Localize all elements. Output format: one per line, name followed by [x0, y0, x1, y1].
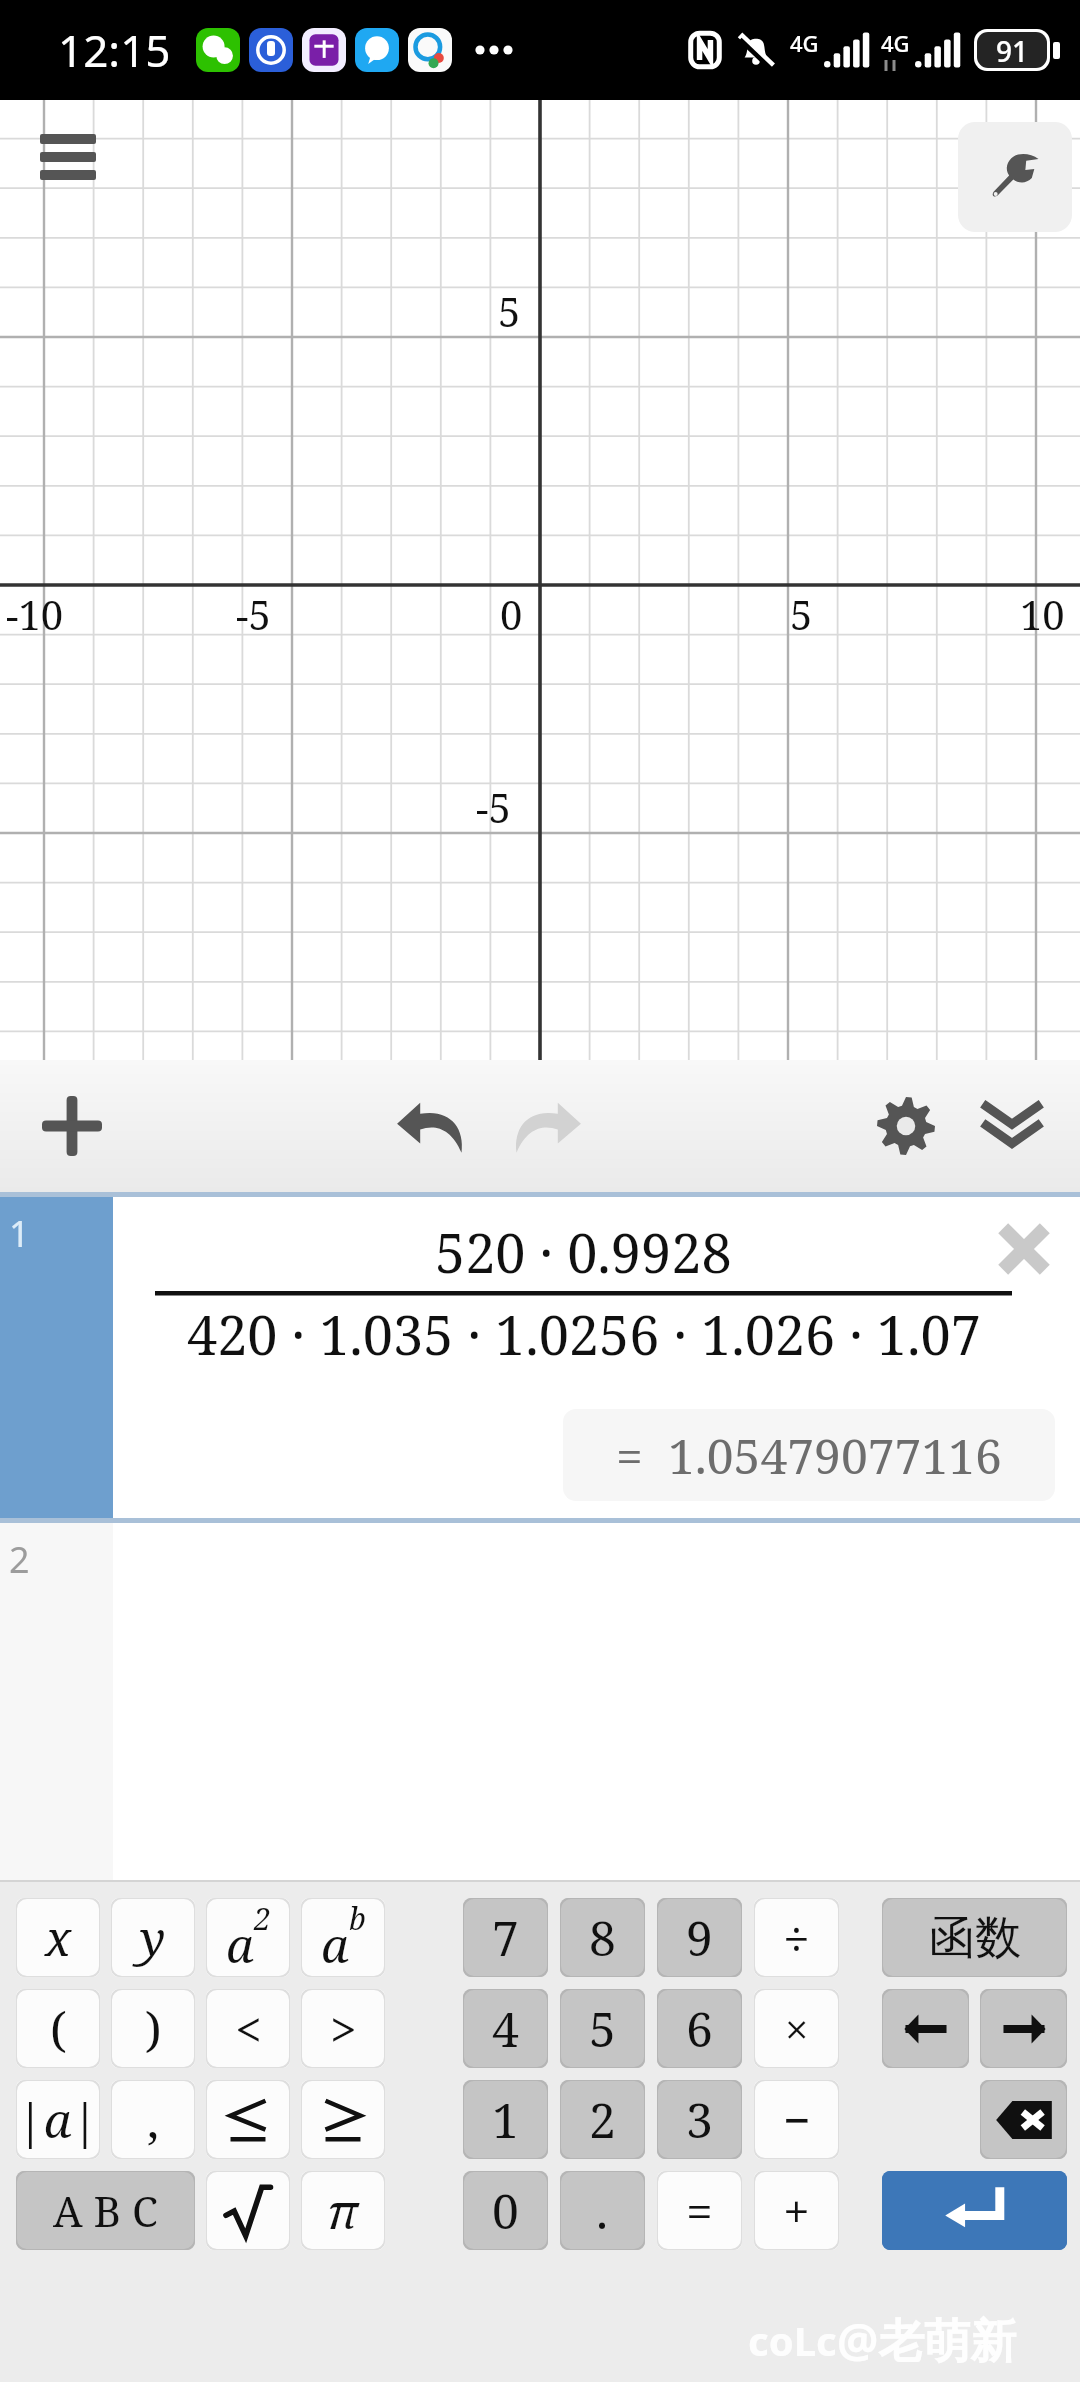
staticText: × [785, 2000, 809, 2057]
staticText: 7 [492, 1905, 519, 1970]
staticText: 8 [589, 1905, 616, 1970]
staticText: 函数 [929, 1909, 1021, 1967]
staticText: 1 [9, 1209, 30, 1258]
button[interactable]: ) [111, 1989, 195, 2068]
button[interactable]: Redo [490, 1068, 606, 1184]
staticText: . [596, 2178, 609, 2243]
button[interactable]: , [111, 2080, 195, 2159]
staticText: + [783, 2178, 810, 2243]
button[interactable] [301, 2080, 385, 2159]
button[interactable] [206, 2080, 290, 2159]
button[interactable]: 3 [657, 2080, 742, 2159]
staticText: 91 [996, 32, 1029, 68]
staticText: A B C [53, 2182, 158, 2239]
staticText: 1 [492, 2087, 519, 2152]
staticText: = [686, 2178, 713, 2243]
button[interactable]: ( [16, 1989, 100, 2068]
staticText: 9 [686, 1905, 713, 1970]
button[interactable]: Delete expression [976, 1201, 1072, 1297]
staticText: @老萌新 [837, 2308, 1017, 2371]
staticText: b [349, 1898, 366, 1939]
button[interactable]: |a| [16, 2080, 100, 2159]
staticText: |a| [17, 2087, 99, 2152]
staticText: − [783, 2087, 811, 2152]
button[interactable]: + [754, 2171, 839, 2250]
button[interactable]: 0 [463, 2171, 548, 2250]
button[interactable]: Menu [22, 110, 114, 202]
staticText: π [327, 2178, 359, 2243]
staticText: -5 [476, 780, 511, 834]
button[interactable]: a [206, 1898, 290, 1977]
staticText: , [147, 2087, 160, 2152]
staticText: 5 [790, 587, 813, 641]
button[interactable]: Settings [848, 1068, 964, 1184]
staticText: y [140, 1905, 166, 1970]
button[interactable]: 9 [657, 1898, 742, 1977]
button[interactable]: 8 [560, 1898, 645, 1977]
button[interactable]: > [301, 1989, 385, 2068]
button[interactable]: Collapse keypad [954, 1068, 1070, 1184]
staticText: ( [50, 1996, 67, 2061]
button[interactable]: Enter [882, 2171, 1067, 2250]
button[interactable]: × [754, 1989, 839, 2068]
staticText: a [226, 1912, 254, 1977]
button[interactable]: x [16, 1898, 100, 1977]
button[interactable]: Graph settings [958, 122, 1072, 232]
staticText: = 1.05479077116 [616, 1423, 1002, 1488]
staticText: < [235, 1996, 262, 2061]
staticText: 6 [686, 1996, 713, 2061]
button[interactable]: − [754, 2080, 839, 2159]
button[interactable]: Undo [372, 1068, 488, 1184]
staticText: -10 [6, 587, 64, 641]
button[interactable]: 1 [0, 1197, 1080, 1518]
staticText: 12:15 [58, 20, 171, 80]
button[interactable]: Move cursor left [882, 1989, 969, 2068]
staticText: 5 [589, 1996, 616, 2061]
button[interactable]: 6 [657, 1989, 742, 2068]
button[interactable]: 1 [463, 2080, 548, 2159]
staticText: 10 [1020, 587, 1065, 641]
staticText: x [45, 1905, 72, 1970]
staticText: 5 [498, 284, 521, 338]
staticText: 2 [254, 1898, 271, 1939]
staticText: ) [145, 1996, 162, 2061]
button[interactable]: 4 [463, 1989, 548, 2068]
staticText: 4G [790, 28, 819, 58]
staticText: a [321, 1912, 349, 1977]
button[interactable]: 2 [560, 2080, 645, 2159]
staticText: 4 [492, 1996, 519, 2061]
staticText: 2 [9, 1535, 30, 1584]
button[interactable]: A B C [16, 2171, 195, 2250]
button[interactable] [206, 2171, 290, 2250]
staticText: -5 [236, 587, 271, 641]
button[interactable]: . [560, 2171, 645, 2250]
button[interactable]: 函数 [882, 1898, 1067, 1977]
button[interactable]: 2 [0, 1523, 1080, 1880]
button[interactable]: Add expression [14, 1068, 130, 1184]
button[interactable]: y [111, 1898, 195, 1977]
staticText: 3 [686, 2087, 713, 2152]
button[interactable]: Backspace [980, 2080, 1067, 2159]
button[interactable]: π [301, 2171, 385, 2250]
button[interactable]: ÷ [754, 1898, 839, 1977]
button[interactable]: < [206, 1989, 290, 2068]
button[interactable]: = [657, 2171, 742, 2250]
staticText: 520 · 0.9928 [435, 1215, 732, 1289]
staticText: 4G [881, 28, 910, 58]
staticText: > [330, 1996, 357, 2061]
staticText: 2 [589, 2087, 616, 2152]
staticText: 0 [500, 587, 523, 641]
button[interactable]: 5 [560, 1989, 645, 2068]
button[interactable]: a [301, 1898, 385, 1977]
button[interactable]: Move cursor right [980, 1989, 1067, 2068]
staticText: coLc [748, 2313, 837, 2367]
staticText: 0 [492, 2178, 519, 2243]
button[interactable]: 7 [463, 1898, 548, 1977]
staticText: ÷ [783, 1905, 810, 1970]
staticText: 420 · 1.035 · 1.0256 · 1.026 · 1.07 [187, 1297, 981, 1371]
